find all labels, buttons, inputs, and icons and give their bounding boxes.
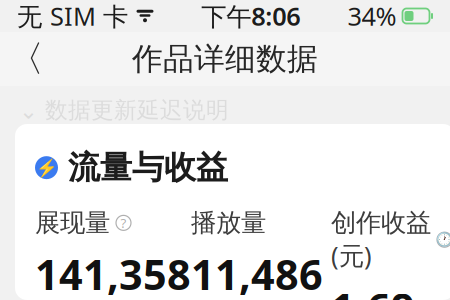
- staticText: 展现量: [35, 207, 110, 238]
- staticText: 流量与收益: [68, 148, 228, 187]
- staticText: 141,358: [35, 246, 191, 300]
- button[interactable]: 返回: [3, 36, 49, 82]
- staticText: ⚡: [35, 158, 57, 178]
- staticText: 播放量: [191, 207, 266, 238]
- staticText: ⌄ 数据更新延迟说明: [19, 96, 229, 124]
- staticText: 1.69: [331, 280, 415, 300]
- staticText: 无 SIM 卡: [17, 0, 128, 33]
- staticText: ?: [120, 214, 126, 232]
- staticText: 34%: [347, 0, 396, 33]
- staticText: 〈: [8, 37, 44, 81]
- staticText: 创作收益(元): [331, 207, 431, 272]
- staticText: 11,486: [191, 246, 323, 300]
- staticText: 作品详细数据: [132, 40, 318, 78]
- staticText: 🕐: [436, 232, 450, 247]
- staticText: 下午8:06: [201, 0, 300, 33]
